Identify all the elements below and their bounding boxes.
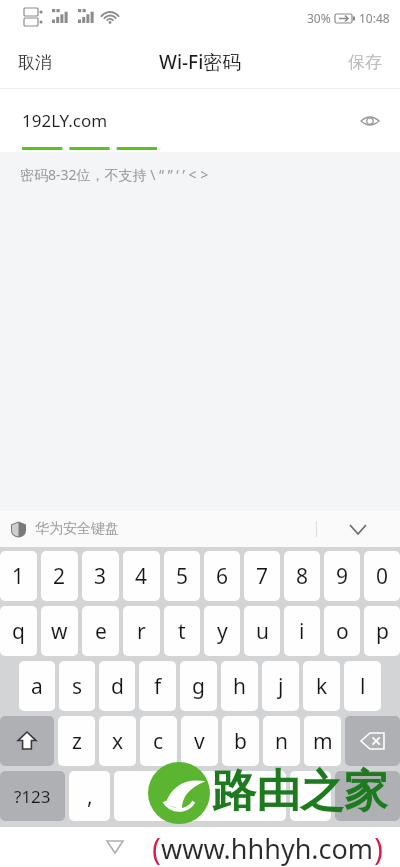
button[interactable]: p (364, 606, 400, 656)
button[interactable]: Shift (0, 716, 54, 766)
staticText: . (308, 782, 314, 811)
staticText: s (72, 672, 83, 701)
staticText: 30% (307, 10, 331, 26)
staticText: p (376, 617, 389, 646)
button[interactable]: 4 (123, 551, 160, 601)
staticText: y (217, 617, 228, 646)
staticText: t (178, 617, 186, 646)
staticText: 192LY.com (22, 109, 108, 132)
button[interactable]: b (222, 716, 259, 766)
staticText: d (111, 672, 124, 701)
staticText: 路由之家 (212, 764, 388, 819)
button[interactable]: Back (93, 827, 137, 867)
button[interactable]: Backspace (345, 716, 400, 766)
button[interactable]: w (41, 606, 78, 656)
staticText: ) (374, 828, 383, 867)
staticText: 4 (135, 562, 148, 591)
button[interactable]: Show password (352, 103, 388, 139)
staticText: www.hhhyh.com (161, 830, 374, 867)
staticText: 5 (176, 562, 189, 591)
button[interactable]: 7 (244, 551, 280, 601)
staticText: ( (152, 828, 161, 867)
button[interactable]: u (244, 606, 280, 656)
button[interactable]: 保存 (330, 42, 400, 83)
button[interactable]: 9 (324, 551, 360, 601)
button[interactable]: q (0, 606, 37, 656)
staticText: z (72, 727, 82, 756)
staticText: 8 (296, 562, 309, 591)
button[interactable]: k (303, 661, 340, 711)
button[interactable]: . (290, 771, 331, 821)
button[interactable]: ?123 (0, 771, 65, 821)
button[interactable]: z (58, 716, 95, 766)
button[interactable]: Space (114, 771, 286, 821)
button[interactable]: Hide keyboard (338, 511, 378, 547)
button[interactable]: f (139, 661, 176, 711)
button[interactable]: l (344, 661, 381, 711)
staticText: 3 (94, 562, 107, 591)
button[interactable]: h (221, 661, 258, 711)
button[interactable]: 0 (364, 551, 400, 601)
button[interactable]: x (99, 716, 136, 766)
button[interactable]: 2 (41, 551, 78, 601)
button[interactable]: n (263, 716, 300, 766)
button[interactable]: 1 (0, 551, 37, 601)
button[interactable]: j (262, 661, 299, 711)
button[interactable]: e (82, 606, 119, 656)
staticText: 华为安全键盘 (35, 520, 119, 538)
staticText: u (256, 617, 269, 646)
staticText: o (336, 617, 349, 646)
staticText: x (112, 727, 124, 756)
button[interactable]: 8 (284, 551, 320, 601)
button[interactable]: r (123, 606, 160, 656)
staticText: 0 (376, 562, 389, 591)
button[interactable]: 3 (82, 551, 119, 601)
staticText: 1 (12, 562, 25, 591)
button[interactable]: c (140, 716, 177, 766)
button[interactable]: s (59, 661, 95, 711)
button[interactable]: t (164, 606, 200, 656)
button[interactable]: 5 (164, 551, 200, 601)
staticText: f (154, 672, 162, 701)
staticText: 9 (336, 562, 349, 591)
staticText: c (153, 727, 164, 756)
staticText: 6 (216, 562, 229, 591)
staticText: m (313, 727, 333, 756)
button[interactable]: i (284, 606, 320, 656)
button[interactable]: o (324, 606, 360, 656)
staticText: v (194, 727, 205, 756)
staticText: e (95, 617, 107, 646)
staticText: 10:48 (359, 10, 390, 26)
staticText: b (234, 727, 247, 756)
button[interactable]: v (181, 716, 218, 766)
staticText: a (31, 672, 43, 701)
staticText: 保存 (348, 52, 382, 73)
staticText: 7 (256, 562, 269, 591)
staticText: Wi-Fi密码 (159, 49, 242, 75)
staticText: k (316, 672, 328, 701)
staticText: i (299, 617, 305, 646)
staticText: 2 (53, 562, 66, 591)
button[interactable]: Enter (335, 771, 400, 821)
button[interactable]: a (19, 661, 55, 711)
button[interactable]: d (99, 661, 135, 711)
staticText: ?123 (14, 785, 51, 808)
staticText: n (275, 727, 288, 756)
staticText: q (12, 617, 25, 646)
staticText: 密码8-32位，不支持 \ “ ” ‘ ’ < > (20, 165, 209, 184)
button[interactable]: 取消 (0, 42, 70, 83)
button[interactable]: m (304, 716, 341, 766)
button[interactable]: 6 (204, 551, 240, 601)
staticText: j (278, 672, 284, 701)
staticText: l (360, 672, 366, 701)
staticText: r (137, 617, 146, 646)
button[interactable]: y (204, 606, 240, 656)
staticText: w (51, 617, 68, 646)
button[interactable]: g (180, 661, 217, 711)
staticText: g (192, 672, 205, 701)
staticText: 取消 (18, 52, 52, 73)
staticText: , (87, 782, 93, 811)
button[interactable]: , (69, 771, 110, 821)
staticText: h (233, 672, 246, 701)
